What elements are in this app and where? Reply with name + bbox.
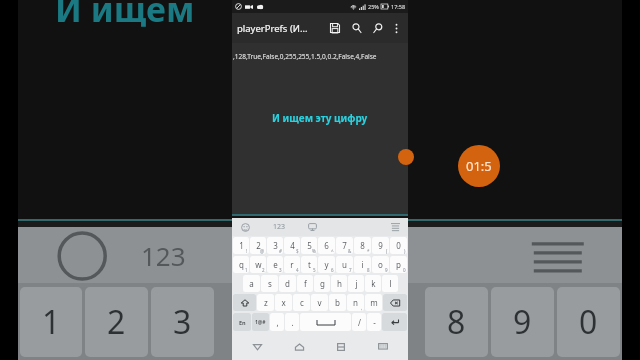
button[interactable]: c xyxy=(293,294,310,311)
button[interactable]: l xyxy=(382,275,398,292)
button[interactable]: Symbols xyxy=(252,313,269,331)
button[interactable]: v xyxy=(311,294,328,311)
staticText: 25% xyxy=(368,3,379,10)
button[interactable]: Emoji xyxy=(238,220,252,234)
staticText: 7 xyxy=(349,267,352,273)
staticText: x xyxy=(281,297,286,308)
button[interactable]: b xyxy=(329,294,346,311)
button[interactable]: 1 xyxy=(233,237,249,254)
staticText: 9 xyxy=(385,267,388,273)
staticText: En xyxy=(239,319,246,326)
button[interactable]: 123 xyxy=(270,222,289,232)
button[interactable]: / xyxy=(352,313,366,331)
button[interactable]: x xyxy=(275,294,292,311)
button[interactable]: Backspace xyxy=(383,294,407,311)
staticText: 2 xyxy=(262,267,265,273)
staticText: 3 xyxy=(273,240,278,251)
staticText: 17:58 xyxy=(391,3,406,10)
button[interactable]: e xyxy=(267,256,283,273)
button[interactable]: w xyxy=(250,256,266,273)
button[interactable]: 5 xyxy=(301,237,317,254)
button[interactable]: , xyxy=(270,313,284,331)
staticText: s xyxy=(268,278,272,289)
staticText: i xyxy=(361,259,364,270)
staticText: 0 xyxy=(403,267,406,273)
staticText: t xyxy=(308,259,311,270)
button[interactable]: 8 xyxy=(354,237,371,254)
button[interactable]: a xyxy=(243,275,260,292)
button[interactable]: 9 xyxy=(372,237,389,254)
staticText: 7 xyxy=(342,240,347,251)
button[interactable]: Clipboard xyxy=(305,220,319,234)
button[interactable]: t xyxy=(301,256,317,273)
staticText: h xyxy=(337,278,342,289)
staticText: 123 xyxy=(273,222,286,232)
button[interactable]: z xyxy=(257,294,274,311)
button[interactable]: i xyxy=(354,256,371,273)
button[interactable]: p xyxy=(390,256,407,273)
button[interactable]: Save xyxy=(326,19,344,37)
staticText: ) xyxy=(404,248,406,254)
staticText: ^ xyxy=(331,248,334,254)
button[interactable]: 0 xyxy=(390,237,407,254)
button[interactable]: o xyxy=(372,256,389,273)
button[interactable]: Recent apps xyxy=(330,336,352,358)
button[interactable]: 6 xyxy=(318,237,335,254)
staticText: 0 xyxy=(396,240,401,251)
button[interactable]: Keyboard menu xyxy=(388,220,402,234)
button[interactable]: 3 xyxy=(267,237,283,254)
staticText: o xyxy=(378,259,383,270)
staticText: e xyxy=(273,259,278,270)
button[interactable] xyxy=(300,313,351,331)
button[interactable]: j xyxy=(348,275,364,292)
staticText: 3 xyxy=(279,267,282,273)
button[interactable]: q xyxy=(233,256,249,273)
button[interactable]: f xyxy=(297,275,313,292)
staticText: 3 xyxy=(173,300,192,344)
button[interactable]: Enter xyxy=(382,313,407,331)
button[interactable]: Shift xyxy=(233,294,256,311)
staticText: 8 xyxy=(447,300,466,344)
staticText: b xyxy=(335,297,340,308)
button[interactable]: r xyxy=(284,256,300,273)
button[interactable]: g xyxy=(314,275,330,292)
staticText: 1 xyxy=(239,240,244,251)
button[interactable]: - xyxy=(367,313,381,331)
button[interactable]: 2 xyxy=(250,237,266,254)
button[interactable]: s xyxy=(261,275,278,292)
button[interactable]: m xyxy=(365,294,382,311)
button[interactable]: Search xyxy=(348,19,366,37)
staticText: k xyxy=(371,278,376,289)
staticText: 1@# xyxy=(255,319,266,326)
staticText: & xyxy=(348,248,352,254)
button[interactable]: d xyxy=(279,275,296,292)
button[interactable]: 4 xyxy=(284,237,300,254)
staticText: v xyxy=(317,297,322,308)
staticText: z xyxy=(264,297,268,308)
staticText: . xyxy=(291,317,294,328)
staticText: 1 xyxy=(245,267,248,273)
button[interactable]: k xyxy=(365,275,381,292)
staticText: / xyxy=(358,317,361,328)
button[interactable]: More options xyxy=(389,21,403,35)
button[interactable]: 7 xyxy=(336,237,353,254)
staticText: 6 xyxy=(331,267,334,273)
staticText: p xyxy=(396,259,401,270)
button[interactable]: . xyxy=(285,313,299,331)
staticText: 5 xyxy=(307,240,312,251)
button[interactable]: y xyxy=(318,256,335,273)
staticText: c xyxy=(300,297,304,308)
button[interactable]: Hide keyboard xyxy=(372,336,394,358)
button[interactable]: h xyxy=(331,275,347,292)
button[interactable]: n xyxy=(347,294,364,311)
staticText: @ xyxy=(260,248,265,254)
staticText: 8 xyxy=(367,267,370,273)
button[interactable]: Language xyxy=(233,313,251,331)
staticText: g xyxy=(320,278,325,289)
button[interactable]: Search next xyxy=(369,19,387,37)
staticText: playerPrefs (И… xyxy=(237,22,326,35)
staticText: q xyxy=(239,259,244,270)
button[interactable]: u xyxy=(336,256,353,273)
button[interactable]: Home xyxy=(288,336,310,358)
button[interactable]: Back xyxy=(246,336,268,358)
